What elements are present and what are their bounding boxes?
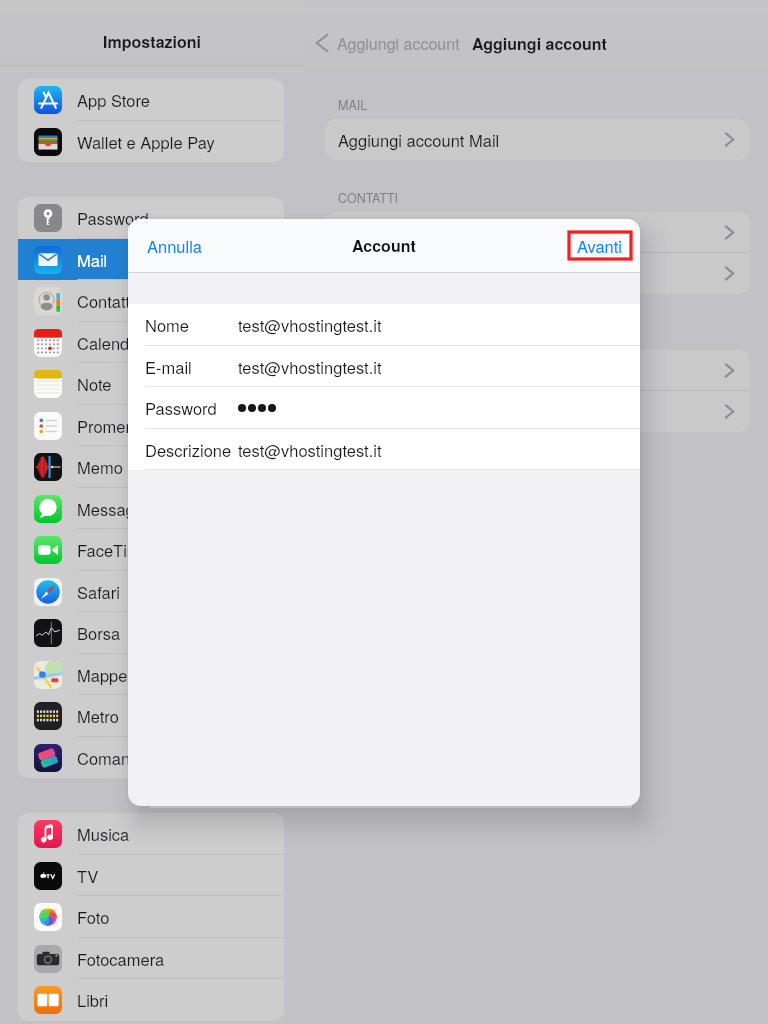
button[interactable]: Mappe [18, 654, 284, 695]
staticText: Memo Vocali [77, 455, 172, 479]
staticText: Mail [77, 248, 108, 272]
button[interactable] [325, 350, 750, 391]
staticText: Annulla [147, 234, 203, 258]
button[interactable]: Avanti [569, 228, 631, 264]
button[interactable]: Password [128, 387, 640, 429]
button[interactable]: Contatti [18, 280, 284, 322]
staticText: Musica [77, 822, 130, 846]
staticText: Impostazioni [0, 30, 304, 53]
staticText: Metro [77, 704, 119, 728]
staticText: Foto [77, 905, 110, 929]
staticText: test@vhostingtest.it [238, 438, 382, 462]
staticText: Mappe [77, 663, 128, 687]
staticText: FaceTime [77, 538, 150, 562]
staticText: Libri [77, 988, 109, 1012]
button[interactable]: Password [18, 197, 284, 239]
staticText: Aggiungi account [472, 32, 607, 55]
button[interactable]: Fotocamera [18, 938, 284, 979]
staticText: Messaggi [77, 497, 148, 521]
staticText: Borsa [77, 621, 121, 645]
button[interactable]: Nome [128, 304, 640, 346]
button[interactable]: TV [18, 855, 284, 896]
staticText: Wallet e Apple Pay [77, 130, 215, 154]
button[interactable]: Messaggi [18, 488, 284, 529]
staticText: Promemoria [77, 414, 167, 438]
staticText: test@vhostingtest.it [238, 355, 382, 379]
button[interactable]: Descrizione [128, 429, 640, 470]
staticText: Nome [145, 313, 190, 337]
button[interactable] [325, 391, 750, 432]
staticText: Aggiungi account [337, 32, 460, 55]
button[interactable]: Calendario [18, 322, 284, 363]
button[interactable]: Note [18, 363, 284, 405]
button[interactable]: Metro [18, 695, 284, 737]
staticText: Note [77, 372, 112, 396]
staticText: test@vhostingtest.it [238, 313, 382, 337]
button[interactable] [325, 212, 750, 253]
staticText: Avanti [577, 234, 623, 258]
button[interactable]: Foto [18, 896, 284, 938]
button[interactable]: Memo Vocali [18, 446, 284, 488]
button[interactable]: Borsa [18, 612, 284, 654]
button[interactable]: App Store [18, 79, 284, 121]
staticText: Comandi [77, 746, 144, 770]
staticText: Safari [77, 580, 120, 604]
staticText: Descrizione [145, 438, 232, 462]
staticText: Aggiungi account Mail [338, 128, 500, 152]
staticText: Contatti [77, 289, 134, 313]
staticText: TV [77, 864, 99, 888]
button[interactable]: Annulla [139, 228, 211, 264]
button[interactable]: E-mail [128, 346, 640, 387]
button[interactable]: Comandi [18, 737, 284, 778]
button[interactable]: Indietro [310, 31, 460, 55]
button[interactable]: Mail [18, 239, 284, 280]
staticText: App Store [77, 88, 150, 112]
button[interactable]: Libri [18, 979, 284, 1021]
button[interactable]: Promemoria [18, 405, 284, 446]
staticText: Calendario [77, 331, 157, 355]
staticText: Password [77, 206, 149, 230]
staticText: CALENDARI [338, 327, 409, 345]
button[interactable]: Aggiungi account Mail [325, 119, 750, 160]
staticText: CONTATTI [338, 189, 399, 207]
button[interactable]: FaceTime [18, 529, 284, 571]
button[interactable]: Safari [18, 571, 284, 612]
staticText: Fotocamera [77, 947, 165, 971]
button[interactable]: Musica [18, 813, 284, 855]
staticText: MAIL [338, 96, 368, 114]
staticText: Account [352, 234, 416, 257]
button[interactable] [325, 253, 750, 294]
staticText: Password [145, 396, 217, 420]
staticText: E-mail [145, 355, 192, 379]
button[interactable]: Wallet e Apple Pay [18, 121, 284, 162]
